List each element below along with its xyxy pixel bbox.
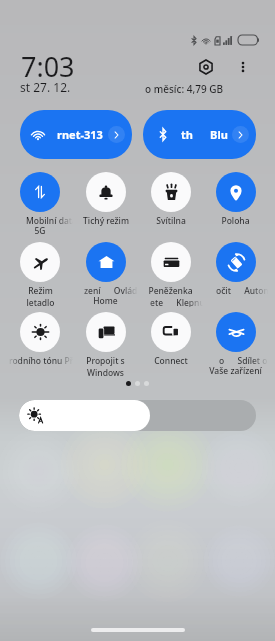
staticText: Režim xyxy=(28,285,53,297)
button[interactable]: Tichý režim xyxy=(73,170,138,227)
staticText: th Blu xyxy=(181,127,232,142)
button[interactable]: Connect xyxy=(138,310,203,367)
staticText: ete Klepnutím xyxy=(150,297,215,307)
staticText: zení Ovládání xyxy=(84,285,149,295)
staticText: letadlo xyxy=(26,297,55,309)
button[interactable]: očit Automaticky xyxy=(203,240,268,295)
staticText: Connect xyxy=(154,355,188,367)
button[interactable]: Režim xyxy=(7,240,73,309)
button[interactable]: Svítilna xyxy=(138,170,203,227)
staticText: očit Automaticky xyxy=(216,285,275,295)
button[interactable]: More options xyxy=(231,55,255,79)
button[interactable]: Peněženka xyxy=(138,240,203,307)
button[interactable]: rnet-313 xyxy=(20,110,132,159)
staticText: Home xyxy=(93,295,118,307)
button[interactable]: Brightness xyxy=(19,400,256,431)
staticText: Peněženka xyxy=(148,285,193,297)
button[interactable]: th Blu xyxy=(143,110,256,159)
button[interactable]: Settings xyxy=(194,55,218,79)
button[interactable]: o Sdílet obsah xyxy=(203,310,268,377)
staticText: o Sdílet obsah xyxy=(219,355,275,365)
staticText: Windows xyxy=(87,367,124,379)
staticText: rnet-313 xyxy=(57,127,108,142)
staticText: Tichý režim xyxy=(83,215,129,227)
button[interactable]: Propojit s xyxy=(73,310,138,379)
staticText: Poloha xyxy=(221,215,250,227)
staticText: Vaše zařízení xyxy=(209,365,262,377)
staticText: Svítilna xyxy=(156,215,186,227)
staticText: rodního tónu Přizpů xyxy=(9,355,75,365)
staticText: 7:03 xyxy=(21,48,75,85)
staticText: Propojit s xyxy=(86,355,125,367)
button[interactable]: Poloha xyxy=(203,170,268,227)
staticText: st 27. 12. xyxy=(20,79,71,95)
staticText: 5G xyxy=(34,225,46,237)
button[interactable]: Mobilní data xyxy=(7,170,73,237)
staticText: o měsíc: 4,79 GB xyxy=(145,82,224,96)
staticText: Mobilní data xyxy=(26,215,92,225)
button[interactable]: zení Ovládání xyxy=(73,240,138,307)
button[interactable]: rodního tónu Přizpů xyxy=(7,310,73,365)
